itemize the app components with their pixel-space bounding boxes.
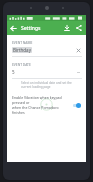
staticText: when the Chance Pomodoro finishes	[12, 105, 70, 115]
button[interactable]: Birthday	[12, 46, 82, 54]
staticText: Settings	[21, 25, 41, 32]
staticText: Birthday	[13, 47, 31, 53]
staticText: Enable Vibration when keypad pressed or	[12, 95, 70, 105]
button[interactable]: More options	[75, 69, 82, 76]
staticText: EVENT NAME	[12, 40, 33, 44]
staticText: EVENT DATE	[12, 62, 31, 66]
button[interactable]: Vibration toggle	[72, 101, 82, 109]
button[interactable]: 5	[12, 68, 82, 76]
button[interactable]: Clear	[75, 47, 82, 54]
staticText: Select an individual date and set the cu…	[21, 81, 82, 89]
staticText: 5	[12, 69, 15, 75]
button[interactable]: Navigate up	[8, 23, 19, 34]
button[interactable]: Share	[73, 22, 85, 34]
button[interactable]: Enable Vibration when keypad pressed or	[12, 95, 82, 115]
button[interactable]: Save	[61, 22, 73, 34]
